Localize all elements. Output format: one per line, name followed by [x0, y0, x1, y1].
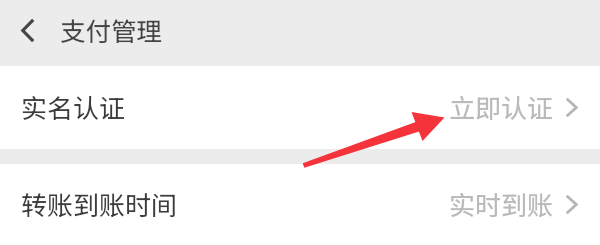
button[interactable]: 实名认证 — [0, 66, 600, 149]
staticText: 转账到账时间 — [21, 185, 178, 223]
staticText: 立即认证 — [449, 88, 554, 126]
staticText: 支付管理 — [60, 11, 163, 48]
staticText: 实时到账 — [449, 185, 554, 223]
button[interactable]: Back — [6, 9, 50, 51]
staticText: 实名认证 — [21, 88, 126, 126]
button[interactable]: 转账到账时间 — [0, 164, 600, 245]
